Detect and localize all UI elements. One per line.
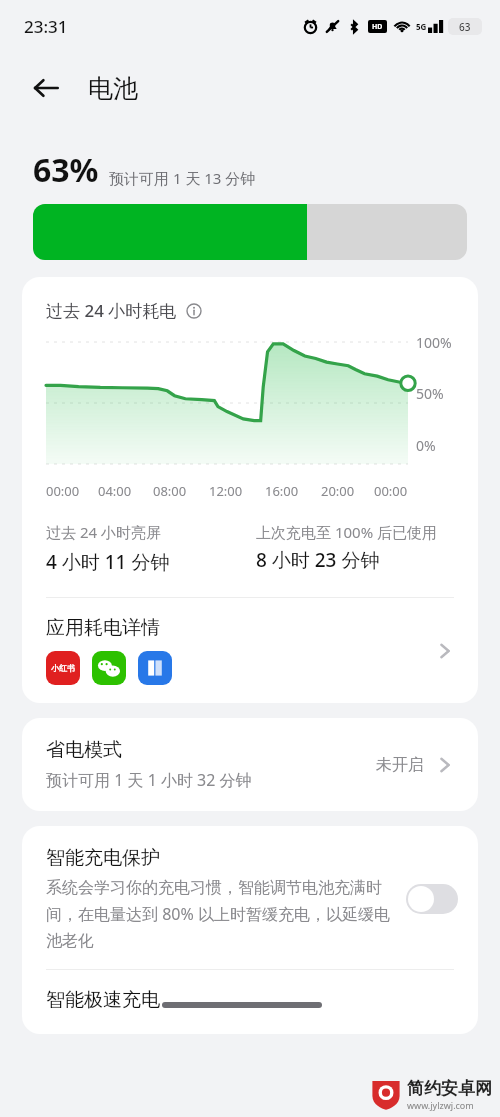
staticText: 简约安卓网 (407, 1078, 492, 1099)
staticText: 过去 24 小时亮屏 (46, 522, 161, 542)
button[interactable]: Back (22, 64, 70, 112)
staticText: 智能充电保护 (46, 846, 160, 870)
staticText: 00:00 (46, 482, 80, 500)
staticText: 0% (416, 436, 436, 455)
staticText: 00:00 (374, 482, 408, 500)
staticText: 50% (416, 384, 444, 403)
staticText: HD (372, 22, 383, 32)
button[interactable]: Info (185, 302, 203, 320)
staticText: 5G (416, 21, 427, 32)
staticText: 12:00 (209, 482, 243, 500)
staticText: 08:00 (153, 482, 187, 500)
staticText: 63 (459, 20, 471, 34)
staticText: 电池 (88, 73, 138, 104)
staticText: 63% (33, 148, 99, 192)
staticText: 23:31 (24, 15, 68, 38)
button[interactable]: 应用耗电详情 (22, 598, 478, 703)
staticText: 省电模式 (46, 738, 122, 762)
staticText: 智能极速充电 (46, 988, 160, 1012)
staticText: 过去 24 小时耗电 (46, 299, 177, 322)
staticText: www.jylzwj.com (407, 1099, 474, 1111)
staticText: 系统会学习你的充电习惯，智能调节电池充满时间，在电量达到 80% 以上时暂缓充电… (46, 878, 392, 951)
staticText: 未开启 (376, 755, 424, 775)
staticText: 20:00 (321, 482, 355, 500)
button[interactable]: 省电模式 (22, 718, 478, 811)
staticText: 预计可用 1 天 13 分钟 (109, 168, 256, 188)
staticText: 应用耗电详情 (46, 616, 160, 640)
staticText: 8 小时 23 分钟 (256, 547, 380, 573)
staticText: 小红书 (51, 663, 75, 673)
staticText: 16:00 (265, 482, 299, 500)
staticText: 100% (416, 333, 452, 352)
staticText: 04:00 (98, 482, 132, 500)
staticText: 预计可用 1 天 1 小时 32 分钟 (46, 769, 252, 791)
button[interactable]: 智能充电保护 (22, 826, 478, 969)
button[interactable]: 智能极速充电 (22, 970, 478, 1034)
staticText: 上次充电至 100% 后已使用 (256, 522, 438, 542)
staticText: 4 小时 11 分钟 (46, 549, 170, 575)
button[interactable]: Toggle smart charging (406, 884, 458, 914)
